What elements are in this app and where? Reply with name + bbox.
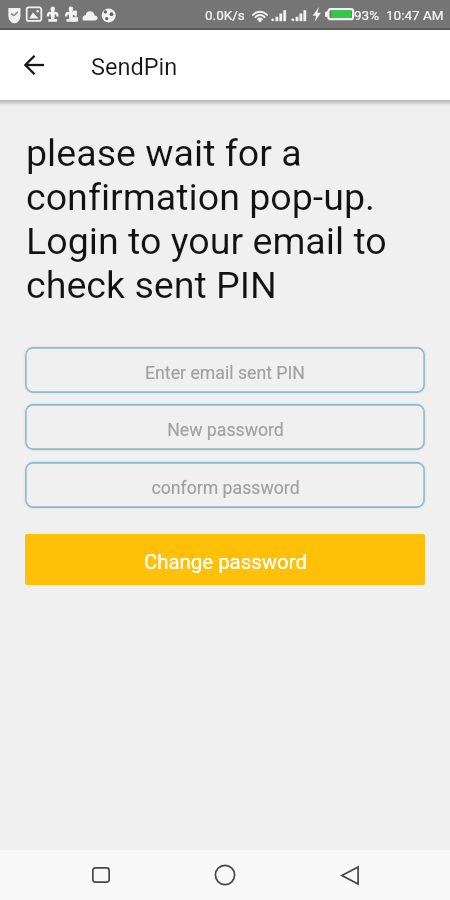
- staticText: 10:47 AM: [386, 7, 444, 23]
- staticText: SendPin: [91, 53, 178, 81]
- staticText: Change password: [144, 550, 307, 574]
- button[interactable]: Back: [12, 41, 60, 89]
- staticText: conform password: [151, 478, 300, 499]
- staticText: 93%: [354, 7, 380, 23]
- staticText: New password: [167, 420, 284, 441]
- button[interactable]: New password: [25, 404, 425, 450]
- button[interactable]: Recent apps: [78, 852, 124, 898]
- button[interactable]: Change password: [25, 534, 425, 585]
- staticText: 0.0K/s: [205, 7, 245, 23]
- button[interactable]: conform password: [25, 462, 425, 508]
- button[interactable]: Home: [202, 852, 248, 898]
- button[interactable]: Enter email sent PIN: [25, 347, 425, 393]
- staticText: please wait for a confirmation pop-up. L…: [26, 131, 436, 307]
- staticText: Enter email sent PIN: [145, 363, 305, 384]
- button[interactable]: Back: [327, 852, 373, 898]
